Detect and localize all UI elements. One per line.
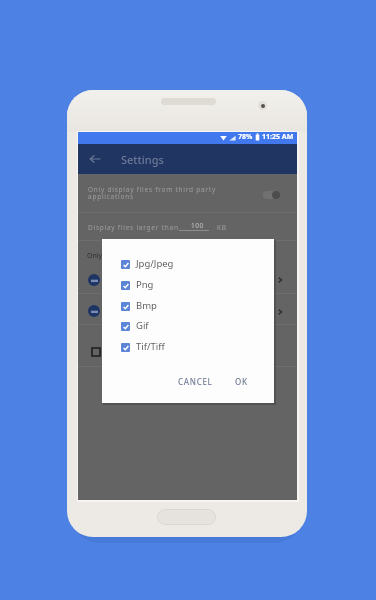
staticText: 78% [238,132,253,142]
staticText: Gif [136,319,149,332]
button[interactable]: Category [88,305,100,317]
staticText: 100 [191,221,204,230]
button[interactable]: Checkbox [91,347,101,357]
staticText: Display files larger than [88,223,179,232]
button[interactable]: Png [121,279,260,292]
button[interactable]: Home [157,509,216,525]
button[interactable]: Category [88,274,100,286]
button[interactable]: Tif/Tiff [121,341,260,354]
staticText: Png [136,278,154,291]
staticText: CANCEL [178,376,213,387]
staticText: Tif/Tiff [136,340,165,353]
staticText: applications [88,192,134,201]
button[interactable]: CANCEL [174,373,217,390]
button[interactable]: OK [231,373,252,390]
staticText: Settings [121,152,164,167]
staticText: 11:25 AM [262,132,294,142]
staticText: KB [217,223,227,232]
button[interactable]: Jpg/Jpeg [121,258,260,271]
staticText: Only show known file types [87,251,177,261]
button[interactable]: Gif [121,320,260,333]
staticText: Jpg/Jpeg [136,257,174,270]
button[interactable]: Back [85,149,105,169]
button[interactable]: Bmp [121,300,260,313]
staticText: Only display files from third party [88,185,216,194]
staticText: Bmp [136,299,157,312]
button[interactable]: Only display files from third party appl… [260,188,286,202]
staticText: OK [235,376,248,387]
